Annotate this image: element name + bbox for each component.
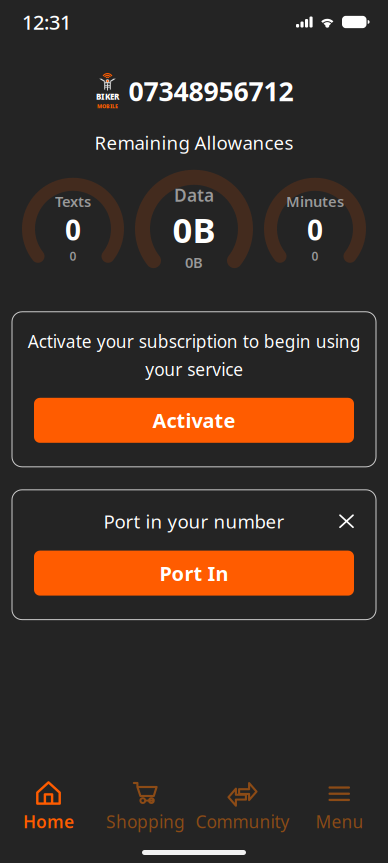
staticText: Activate your subscription to begin usin…: [27, 330, 360, 381]
staticText: Data: [174, 183, 214, 206]
button[interactable]: Close: [339, 514, 354, 528]
button[interactable]: Community: [194, 773, 291, 837]
staticText: Community: [195, 810, 289, 833]
staticText: 12:31: [22, 9, 71, 35]
button[interactable]: Home: [0, 773, 97, 837]
button[interactable]: Activate: [34, 398, 354, 443]
staticText: 0B: [172, 206, 215, 252]
staticText: MOBILE: [97, 102, 118, 110]
staticText: Activate: [152, 407, 235, 434]
staticText: Menu: [315, 810, 363, 833]
button[interactable]: Port In: [34, 551, 354, 596]
button[interactable]: Menu: [291, 773, 388, 837]
staticText: 07348956712: [128, 73, 293, 109]
staticText: Home: [23, 810, 74, 833]
staticText: Port In: [159, 560, 228, 586]
staticText: Minutes: [286, 191, 344, 211]
staticText: Shopping: [106, 810, 185, 833]
staticText: 0: [69, 248, 76, 264]
staticText: 0B: [185, 253, 203, 272]
staticText: Remaining Allowances: [94, 130, 293, 155]
staticText: 0: [311, 248, 318, 264]
staticText: Texts: [55, 191, 91, 211]
staticText: 0: [307, 211, 323, 248]
button[interactable]: Shopping: [97, 773, 194, 837]
staticText: Port in your number: [103, 509, 284, 534]
staticText: 0: [65, 211, 81, 248]
staticText: BIKER: [96, 91, 119, 102]
